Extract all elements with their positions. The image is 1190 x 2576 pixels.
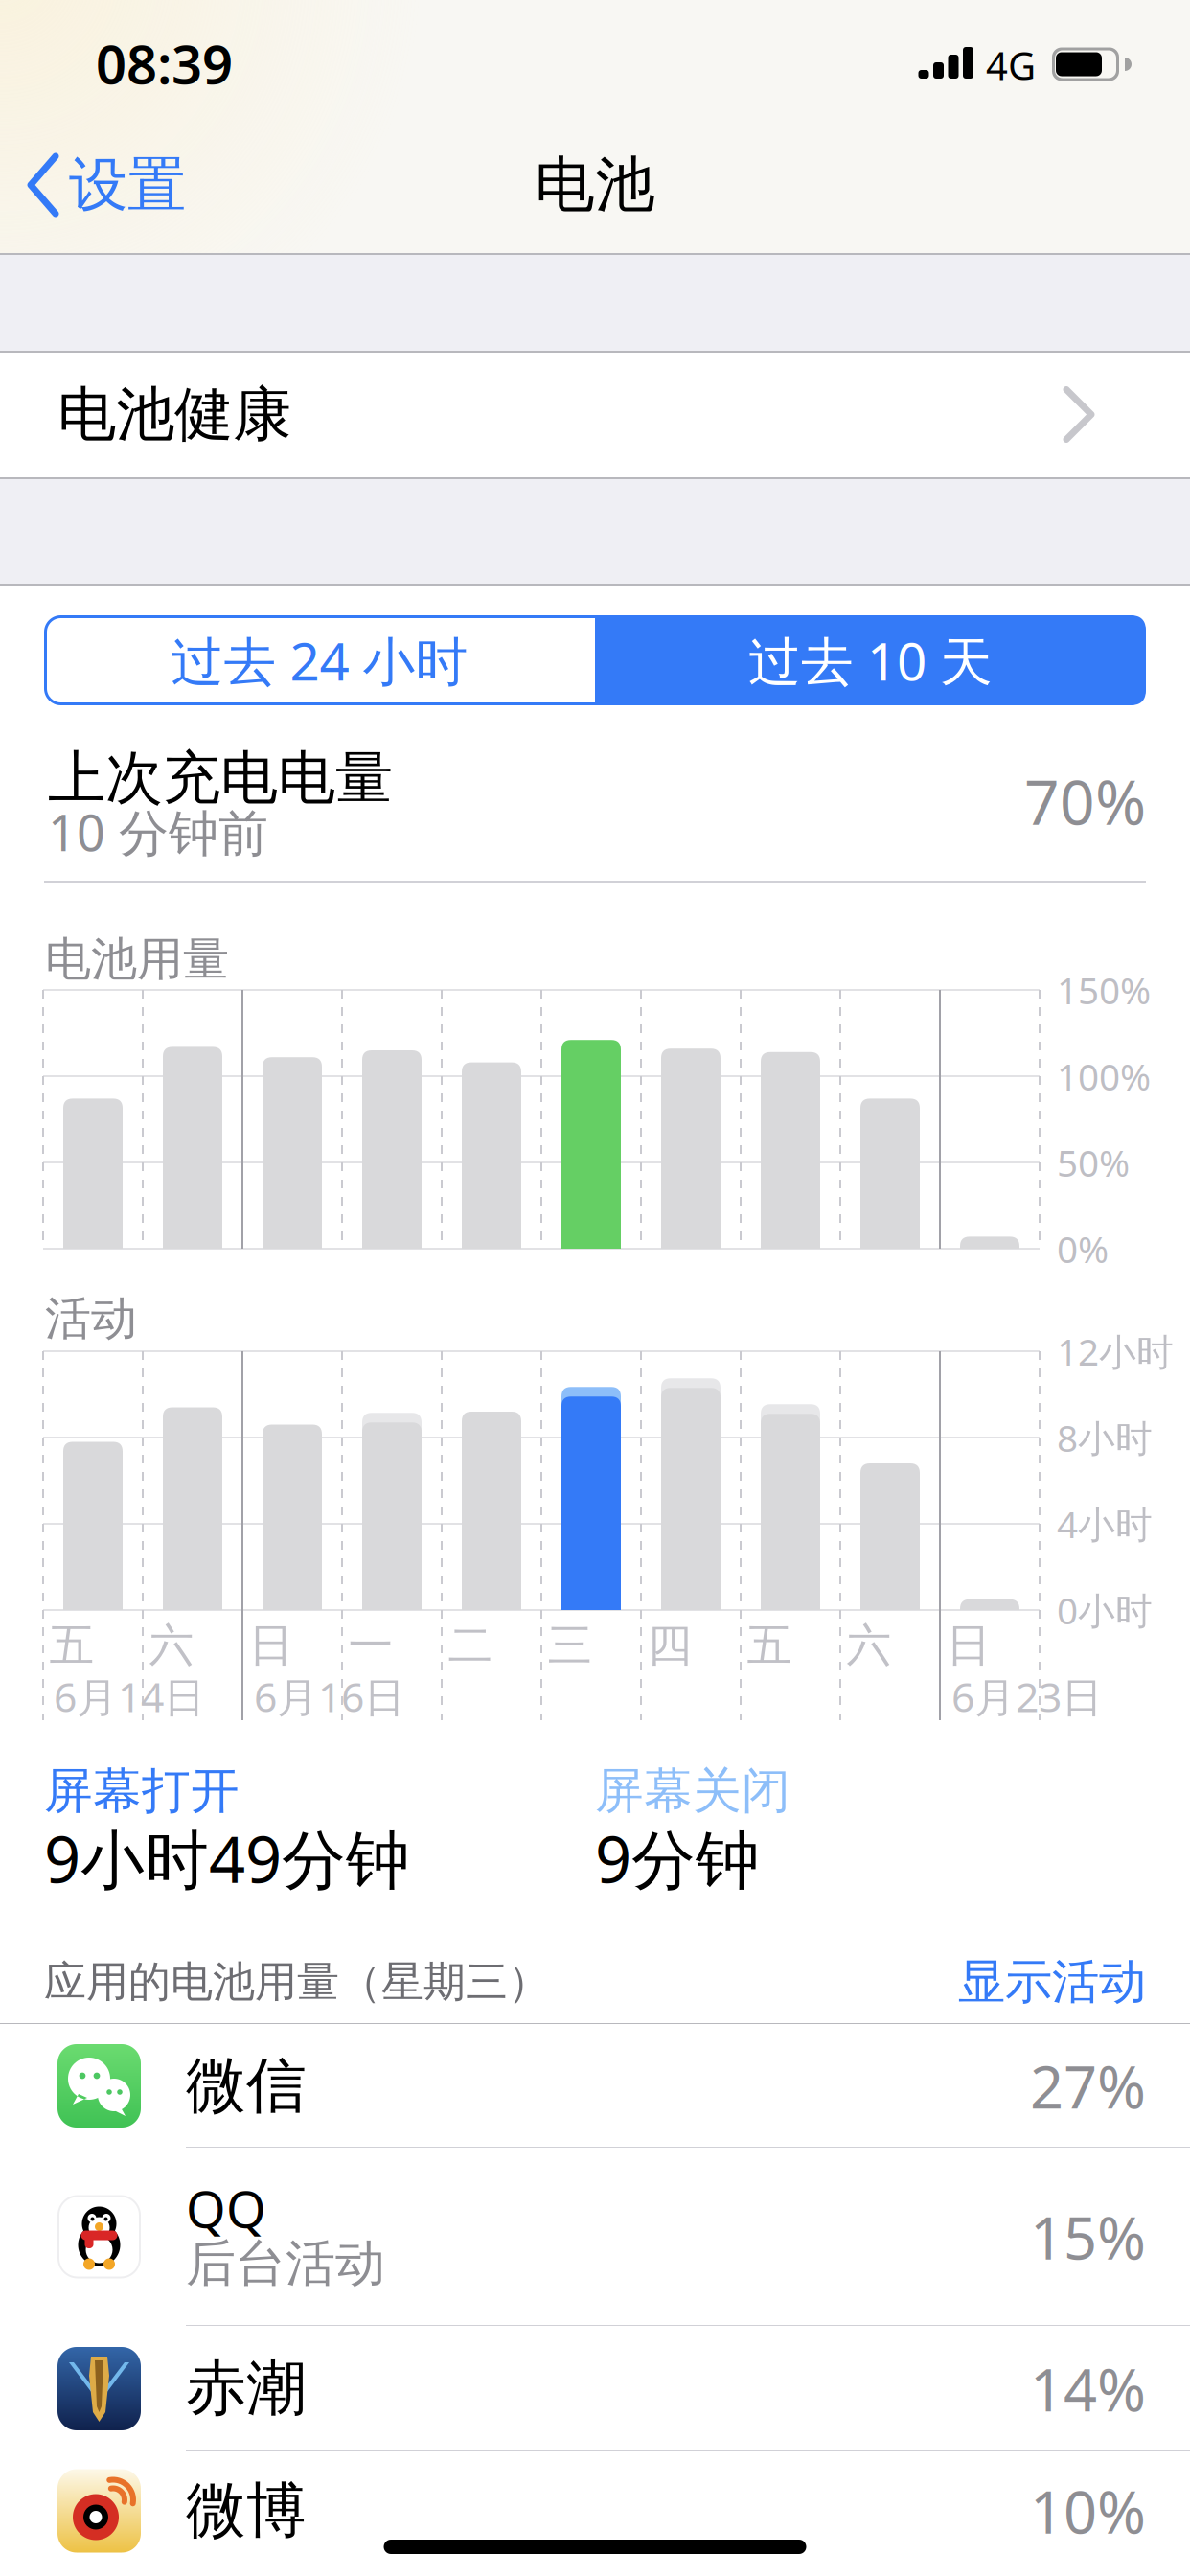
staticText: 电池用量 <box>45 931 229 988</box>
staticText: 50% <box>1057 1138 1130 1187</box>
staticText: 微博 <box>186 2474 307 2548</box>
staticText: 后台活动 <box>186 2233 385 2294</box>
staticText: 设置 <box>69 149 186 221</box>
staticText: 27% <box>1030 2047 1146 2125</box>
button[interactable]: 返回设置 <box>31 149 186 221</box>
staticText: 屏幕关闭 <box>595 1761 790 1821</box>
staticText: 8小时 <box>1057 1413 1153 1462</box>
staticText: 电池健康 <box>57 378 291 451</box>
staticText: 四 <box>647 1618 692 1673</box>
staticText: 9小时49分钟 <box>44 1816 410 1901</box>
staticText: 70% <box>1024 760 1146 842</box>
staticText: 15% <box>1030 2198 1146 2276</box>
staticText: 日 <box>946 1618 991 1673</box>
staticText: 活动 <box>45 1290 137 1347</box>
staticText: 五 <box>49 1618 94 1673</box>
staticText: 0小时 <box>1057 1585 1153 1635</box>
staticText: 150% <box>1057 965 1151 1014</box>
staticText: 电池 <box>535 148 655 222</box>
staticText: 微信 <box>186 2049 307 2123</box>
staticText: 4小时 <box>1057 1499 1153 1548</box>
staticText: 三 <box>548 1618 593 1673</box>
staticText: 4G <box>986 40 1036 91</box>
staticText: 赤潮 <box>186 2352 307 2426</box>
staticText: 应用的电池用量（星期三） <box>44 1956 550 2008</box>
button[interactable]: 微博 <box>0 2451 1190 2570</box>
staticText: 12小时 <box>1057 1327 1174 1376</box>
staticText: QQ <box>186 2174 266 2242</box>
staticText: 日 <box>249 1618 294 1673</box>
staticText: 6月16日 <box>254 1669 405 1723</box>
staticText: 六 <box>149 1618 194 1673</box>
staticText: 五 <box>747 1618 792 1673</box>
button[interactable]: 微信 <box>0 2024 1190 2148</box>
staticText: 6月23日 <box>951 1669 1103 1723</box>
staticText: 08:39 <box>96 28 233 99</box>
staticText: 10% <box>1030 2472 1146 2550</box>
button[interactable]: 显示活动 <box>0 0 1190 2576</box>
staticText: 过去 24 小时 <box>171 626 468 695</box>
staticText: 14% <box>1030 2350 1146 2428</box>
staticText: 6月14日 <box>54 1669 205 1723</box>
button[interactable]: QQ <box>0 2148 1190 2326</box>
staticText: 屏幕打开 <box>44 1761 240 1821</box>
staticText: 上次充电电量 <box>48 743 393 814</box>
staticText: 过去 10 天 <box>748 626 993 695</box>
staticText: 0% <box>1057 1224 1109 1273</box>
staticText: 显示活动 <box>958 1953 1146 2011</box>
staticText: 10 分钟前 <box>48 799 268 865</box>
staticText: 9分钟 <box>595 1816 760 1901</box>
staticText: 100% <box>1057 1052 1151 1101</box>
button[interactable]: 电池健康 <box>0 352 1190 477</box>
staticText: 一 <box>348 1618 393 1673</box>
staticText: 六 <box>847 1618 892 1673</box>
button[interactable]: 过去 10 天 <box>595 615 1146 705</box>
staticText: 二 <box>448 1618 493 1673</box>
button[interactable]: 赤潮 <box>0 2326 1190 2451</box>
button[interactable]: 过去 24 小时 <box>44 615 595 705</box>
